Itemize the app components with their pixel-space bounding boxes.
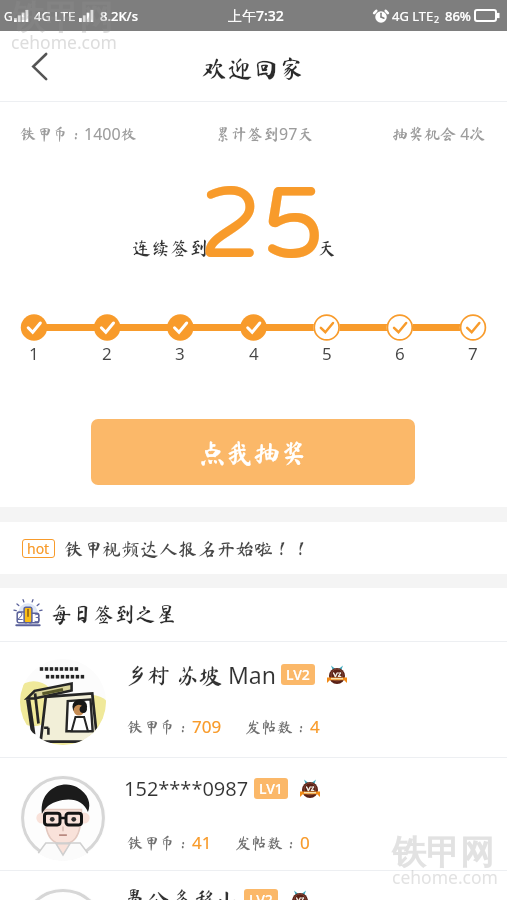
staticText: 3 [175,342,185,365]
staticText: 5 [322,342,332,365]
staticText: 2 [17,608,24,623]
button[interactable]: 点我抽奖 [91,419,415,485]
staticText: 0 [300,831,310,854]
staticText: 4G LTE [392,7,434,25]
button[interactable]: hot [0,522,507,574]
staticText: 铁甲币： [127,719,192,735]
staticText: 上午7:32 [228,6,284,25]
staticText: 7 [468,342,478,365]
staticText: 抽奖机会 4次 [392,123,486,145]
staticText: 铁甲币：1400枚 [20,123,137,145]
staticText: 2 [434,13,440,25]
staticText: 4 [310,715,320,738]
staticText: 铁甲网 [392,831,494,874]
staticText: hot [27,539,50,558]
staticText: 愚公多移山 [124,888,239,900]
staticText: cehome.com [11,30,117,54]
staticText: 3 [34,610,41,625]
staticText: 8.2K/s [100,7,138,25]
staticText: 发帖数： [235,835,300,851]
button[interactable]: Back [21,47,59,85]
staticText: 1 [29,342,39,365]
staticText: 4G LTE [34,7,76,25]
staticText: 25 [199,165,325,275]
staticText: 41 [192,831,212,854]
staticText: cehome.com [392,865,498,889]
staticText: 铁甲视频达人报名开始啦！！ [64,539,312,558]
staticText: LV1 [259,779,283,798]
staticText: 709 [192,715,222,738]
staticText: 铁甲币： [127,835,192,851]
staticText: 发帖数： [245,719,310,735]
staticText: 天 [317,238,337,257]
staticText: 连续签到 [132,238,209,257]
staticText: LV2 [286,665,310,684]
staticText: LV2 [249,890,273,900]
staticText: 累计签到97天 [215,123,314,145]
button[interactable]: 152****0987 [0,758,507,873]
staticText: 86% [445,7,471,25]
staticText: 152****0987 [124,775,249,802]
staticText: 4 [249,342,259,365]
staticText: 2 [102,342,112,365]
staticText: 乡村 苏坡 Man [124,659,276,690]
staticText: 欢迎回家 [201,55,306,81]
staticText: 每日签到之星 [51,604,177,625]
button[interactable]: 愚公多移山 [0,871,507,900]
button[interactable]: 乡村 苏坡 Man [0,642,507,757]
staticText: 铁甲网 [11,0,113,39]
staticText: G [4,8,13,24]
staticText: 6 [395,342,405,365]
staticText: 点我抽奖 [199,439,307,466]
